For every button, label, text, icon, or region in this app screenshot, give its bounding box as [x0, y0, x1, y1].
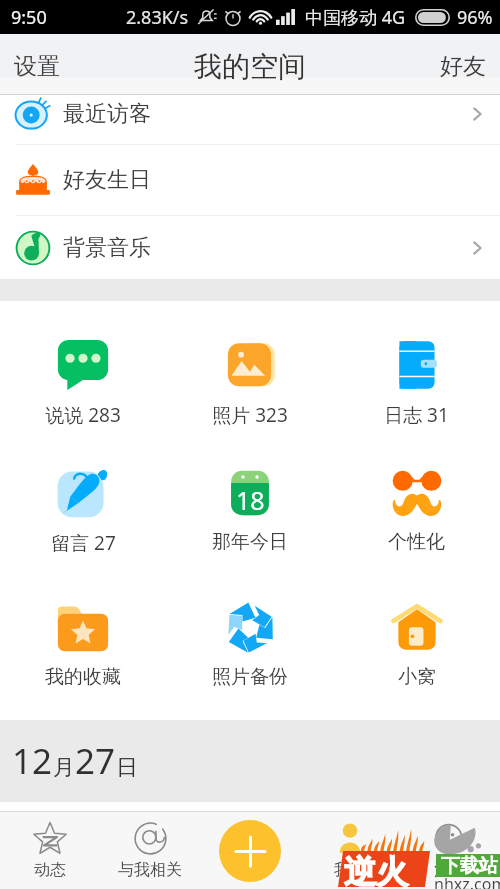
staticText: 27 — [75, 737, 116, 785]
staticText: 与我相关 — [118, 860, 182, 880]
button[interactable]: 18 — [166, 465, 333, 554]
staticText: 日志 31 — [384, 402, 449, 428]
staticText: 照片备份 — [212, 665, 288, 689]
button[interactable]: 说说 283 — [0, 337, 166, 428]
staticText: 12 — [12, 737, 53, 785]
staticText: 日 — [116, 754, 138, 782]
staticText: 个性化 — [388, 530, 445, 554]
button[interactable]: 日志 31 — [333, 337, 500, 428]
staticText: 18 — [236, 483, 265, 517]
button[interactable]: 留言 27 — [0, 465, 166, 556]
staticText: 2.83K/s — [126, 5, 189, 30]
staticText: 最近访客 — [63, 100, 151, 128]
staticText: nhxz.com — [434, 873, 500, 889]
staticText: 设置 — [14, 52, 60, 81]
staticText: 月 — [53, 754, 75, 782]
staticText: 照片 323 — [212, 402, 288, 428]
button[interactable]: 照片备份 — [166, 600, 333, 689]
button[interactable]: 好友生日 — [0, 145, 500, 215]
staticText: 我的收藏 — [45, 665, 121, 689]
button[interactable]: 照片 323 — [166, 337, 333, 428]
button[interactable]: 最近访客 — [0, 95, 500, 138]
staticText: 下载站 — [441, 854, 498, 877]
staticText: 我的 — [334, 860, 366, 880]
staticText: 逆火 — [344, 852, 408, 889]
staticText: 留言 27 — [51, 530, 116, 556]
button[interactable]: 小窝 — [333, 600, 500, 689]
staticText: 背景音乐 — [63, 234, 151, 262]
button[interactable]: 消息 — [400, 812, 500, 889]
staticText: 消息 — [434, 860, 466, 880]
staticText: 小窝 — [398, 665, 436, 689]
staticText: 中国移动 4G — [305, 5, 406, 30]
button[interactable]: 我的收藏 — [0, 600, 166, 689]
staticText: 96% — [457, 5, 493, 30]
button[interactable]: 我的 — [300, 812, 400, 889]
button[interactable]: 个性化 — [333, 465, 500, 554]
button[interactable]: 好友 — [426, 36, 500, 97]
staticText: 说说 283 — [45, 402, 121, 428]
button[interactable]: 发表 — [219, 820, 281, 882]
staticText: 我的空间 — [194, 49, 306, 84]
staticText: 那年今日 — [212, 530, 288, 554]
staticText: 动态 — [34, 860, 66, 880]
button[interactable]: 动态 — [0, 812, 100, 889]
button[interactable]: 设置 — [0, 36, 74, 97]
button[interactable]: 背景音乐 — [0, 216, 500, 279]
button[interactable]: 与我相关 — [100, 812, 200, 889]
staticText: 好友 — [440, 52, 486, 81]
staticText: 好友生日 — [63, 166, 151, 194]
staticText: 9:50 — [11, 5, 47, 30]
